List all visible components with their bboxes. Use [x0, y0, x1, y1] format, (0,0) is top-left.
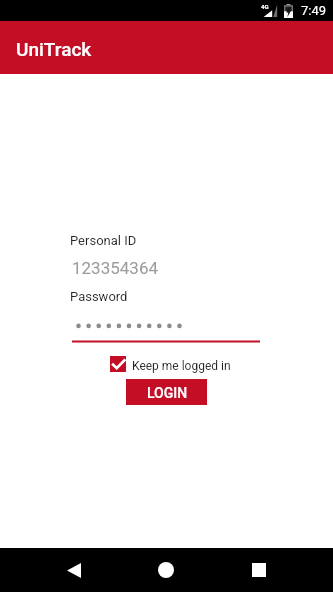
- staticText: 7:49: [301, 3, 327, 18]
- button[interactable]: LOGIN: [126, 379, 207, 405]
- button[interactable]: Recent apps: [237, 548, 281, 592]
- button[interactable]: Password: [70, 287, 260, 345]
- button[interactable]: Keep me logged in: [110, 356, 231, 372]
- button[interactable]: Home: [144, 548, 188, 592]
- staticText: Personal ID: [70, 233, 137, 248]
- staticText: LOGIN: [147, 385, 188, 401]
- button[interactable]: Back: [52, 548, 96, 592]
- staticText: 4G: [261, 3, 269, 10]
- staticText: 123354364: [72, 258, 158, 278]
- staticText: Keep me logged in: [132, 359, 231, 373]
- button[interactable]: Personal ID: [70, 231, 260, 279]
- staticText: Password: [70, 289, 128, 304]
- staticText: UniTrack: [16, 38, 92, 60]
